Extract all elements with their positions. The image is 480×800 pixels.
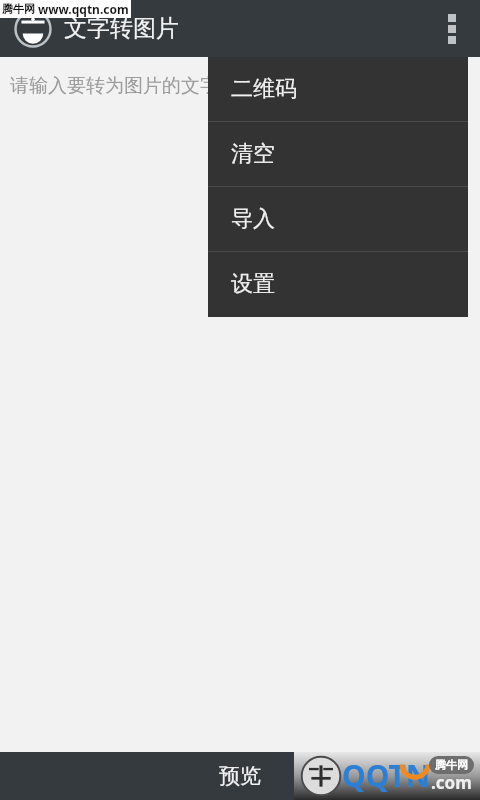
button[interactable]: 二维码: [208, 57, 468, 121]
button[interactable]: More options: [424, 0, 480, 57]
staticText: 请输入要转为图片的文字: [10, 74, 219, 98]
staticText: 导入: [231, 205, 275, 233]
staticText: .com: [431, 771, 472, 794]
button[interactable]: 请输入要转为图片的文字: [0, 57, 480, 752]
staticText: 二维码: [231, 75, 297, 103]
staticText: 清空: [231, 140, 275, 168]
staticText: 腾牛网: [435, 758, 468, 772]
staticText: 预览: [219, 763, 261, 789]
staticText: 腾牛网: [2, 2, 35, 16]
staticText: www.qqtn.com: [38, 1, 129, 17]
button[interactable]: 设置: [208, 252, 468, 316]
button[interactable]: 预览: [0, 752, 480, 800]
staticText: QQTN: [342, 755, 431, 796]
button[interactable]: 清空: [208, 122, 468, 186]
staticText: 设置: [231, 270, 275, 298]
other: App icon: [14, 10, 52, 48]
button[interactable]: 导入: [208, 187, 468, 251]
staticText: 文字转图片: [64, 14, 179, 43]
